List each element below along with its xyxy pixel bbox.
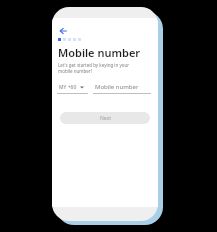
button[interactable]: Back (57, 25, 68, 36)
staticText: Mobile number (58, 45, 141, 60)
button[interactable]: Next (60, 112, 150, 124)
staticText: Mobile number (95, 83, 139, 91)
button[interactable]: Mobile number (93, 83, 151, 94)
staticText: MY +60 (59, 84, 77, 91)
staticText: Next (100, 115, 111, 122)
staticText: Let's get started by keying in your mobi… (58, 62, 144, 74)
button[interactable]: MY +60 (57, 84, 88, 94)
